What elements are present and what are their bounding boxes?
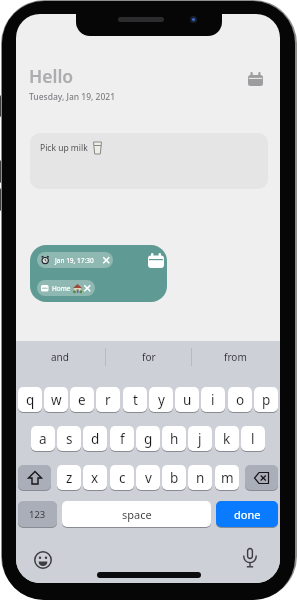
button[interactable]: from [191,347,280,367]
staticText: Pick up milk [40,142,88,154]
button[interactable]: m [215,465,239,490]
button[interactable]: c [110,465,134,490]
staticText: w [51,391,62,409]
staticText: x [91,469,99,487]
button[interactable]: q [18,387,42,412]
staticText: r [105,391,111,409]
button[interactable]: 123 [18,501,57,527]
button[interactable]: j [188,426,212,451]
button[interactable]: p [254,387,278,412]
button[interactable]: e [70,387,94,412]
button[interactable]: a [31,426,55,451]
staticText: b [170,469,179,487]
staticText: l [251,430,255,448]
staticText: v [145,469,152,487]
button[interactable]: done [216,501,278,527]
staticText: f [120,430,125,448]
staticText: m [221,469,234,487]
button[interactable]: x [83,465,107,490]
button[interactable]: Home [37,280,95,296]
staticText: y [158,391,165,409]
staticText: Hello [29,64,74,88]
staticText: Tuesday, Jan 19, 2021 [29,91,116,103]
button[interactable]: w [44,387,68,412]
button[interactable]: and [15,347,104,367]
staticText: Jan 19, 17:30 [55,256,94,265]
button[interactable]: y [149,387,173,412]
button[interactable]: Jan 19, 17:30 [37,252,113,268]
staticText: g [144,430,153,448]
button[interactable] [31,548,55,572]
staticText: p [262,391,271,409]
staticText: c [119,469,126,487]
staticText: done [234,507,261,522]
button[interactable]: s [57,426,81,451]
button[interactable]: f [110,426,134,451]
staticText: and [51,350,69,364]
button[interactable]: d [83,426,107,451]
button[interactable]: o [228,387,252,412]
button[interactable]: space [62,501,211,527]
staticText: for [142,350,156,364]
staticText: a [39,430,47,448]
staticText: q [26,391,35,409]
staticText: n [196,469,205,487]
button[interactable]: r [96,387,120,412]
staticText: e [78,391,86,409]
button[interactable] [238,546,262,570]
button[interactable]: h [162,426,186,451]
button[interactable] [146,250,166,270]
staticText: u [183,391,192,409]
staticText: from [224,350,247,364]
staticText: 123 [29,508,46,521]
button[interactable] [18,465,51,490]
button[interactable]: g [136,426,160,451]
button[interactable]: u [175,387,199,412]
button[interactable]: v [136,465,160,490]
staticText: o [236,391,245,409]
staticText: Home [52,284,71,293]
button[interactable] [245,465,278,490]
button[interactable]: n [188,465,212,490]
staticText: d [91,430,100,448]
button[interactable]: Pick up milk [30,133,268,189]
button[interactable]: k [215,426,239,451]
staticText: s [66,430,73,448]
staticText: t [133,391,138,409]
staticText: space [122,507,152,522]
button[interactable] [246,70,264,88]
staticText: h [170,430,179,448]
button[interactable]: for [104,347,193,367]
button[interactable]: l [241,426,265,451]
button[interactable]: t [123,387,147,412]
button[interactable]: z [57,465,81,490]
button[interactable]: b [162,465,186,490]
button[interactable]: i [201,387,225,412]
staticText: k [223,430,231,448]
staticText: i [211,391,215,409]
staticText: j [198,430,202,448]
staticText: z [66,469,73,487]
